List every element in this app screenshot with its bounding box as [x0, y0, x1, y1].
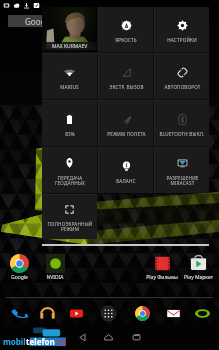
button[interactable]: ПОЛНОЭКРАННЫЙ РЕЖИМ	[42, 195, 97, 239]
button[interactable]: Apps	[100, 305, 116, 321]
staticText: РАЗРЕШЕНИЕ MIRACAST	[166, 175, 199, 187]
button[interactable]: Play Маркет	[180, 254, 216, 281]
staticText: NVIDIA	[46, 274, 64, 281]
button[interactable]: Chrome	[134, 305, 150, 321]
staticText: mobil	[3, 336, 26, 347]
button[interactable]: РАЗРЕШЕНИЕ MIRACAST	[155, 148, 209, 193]
button[interactable]: Back	[73, 328, 91, 346]
button[interactable]: Home	[99, 328, 117, 346]
staticText: MARIUS	[60, 84, 79, 90]
button[interactable]: ПЕРЕДАЧА ГЕОДАННЫХ	[42, 148, 97, 193]
staticText: BLUETOOTH ВЫКЛ.	[159, 131, 205, 137]
button[interactable]: Google	[1, 254, 37, 281]
button[interactable]: YouTube	[68, 305, 84, 321]
staticText: 83%	[65, 131, 75, 137]
button[interactable]: Music	[39, 305, 55, 321]
button[interactable]: НАСТРОЙКИ	[155, 7, 209, 52]
staticText: БАЛАНС	[116, 178, 136, 184]
staticText: Play Маркет	[184, 274, 213, 281]
staticText: Play Фильмы	[146, 274, 178, 281]
staticText: АВТОПОВОРОТ	[164, 84, 201, 90]
staticText: MAX KURMAEV	[52, 43, 88, 50]
staticText: ЭКСТР. ВЫЗОВ	[109, 84, 144, 90]
staticText: telefon	[26, 336, 55, 347]
button[interactable]: NVIDIA	[194, 305, 210, 321]
button[interactable]: Play Фильмы	[144, 254, 180, 281]
button[interactable]: Gmail	[165, 305, 181, 321]
staticText: НАСТРОЙКИ	[167, 37, 197, 43]
staticText: ЯРКОСТЬ	[115, 37, 137, 43]
staticText: РЕЖИМ ПОЛЕТА	[107, 131, 146, 137]
staticText: ПОЛНОЭКРАННЫЙ РЕЖИМ	[47, 221, 93, 233]
button[interactable]: BLUETOOTH ВЫКЛ.	[155, 101, 209, 146]
button[interactable]: ЯРКОСТЬ	[99, 7, 153, 52]
staticText: Google	[25, 16, 52, 27]
button[interactable]: Recents	[127, 328, 145, 346]
button[interactable]: Phone	[11, 305, 27, 321]
staticText: ПЕРЕДАЧА ГЕОДАННЫХ	[55, 175, 85, 187]
button[interactable]: NVIDIA	[37, 254, 73, 281]
button[interactable]: MAX KURMAEV	[42, 7, 97, 52]
button[interactable]: 83%	[42, 101, 97, 146]
button[interactable]: БАЛАНС	[99, 148, 153, 193]
button[interactable]: ЭКСТР. ВЫЗОВ	[99, 54, 153, 99]
button[interactable]: MARIUS	[42, 54, 97, 99]
button[interactable]: Google	[8, 15, 68, 27]
button[interactable]: РЕЖИМ ПОЛЕТА	[99, 101, 153, 146]
staticText: Google	[11, 274, 28, 281]
button[interactable]: АВТОПОВОРОТ	[155, 54, 209, 99]
staticText: .ru	[55, 336, 67, 347]
